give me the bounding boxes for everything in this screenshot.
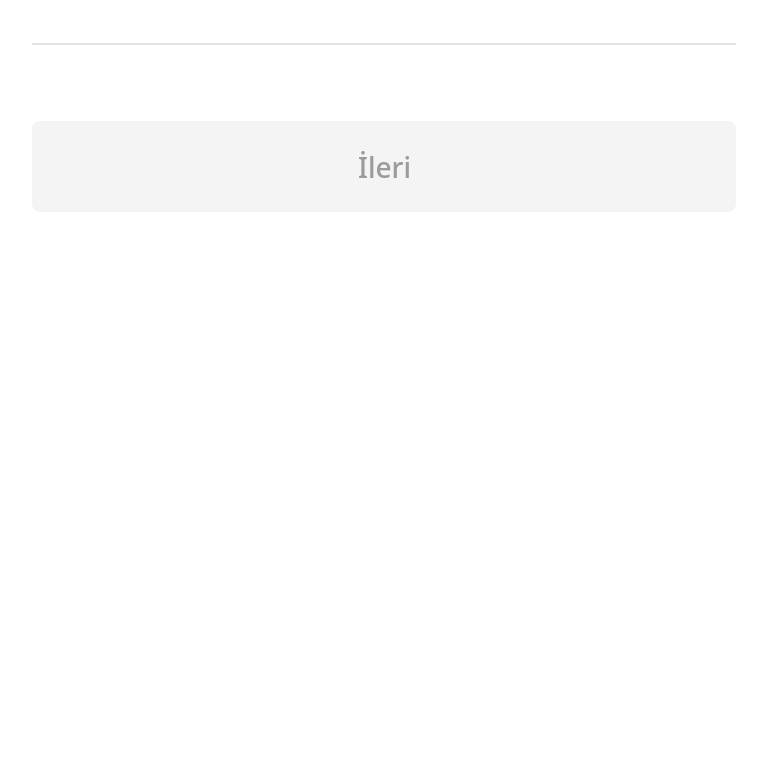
button[interactable]: İleri xyxy=(32,121,736,212)
staticText: İleri xyxy=(358,148,411,186)
